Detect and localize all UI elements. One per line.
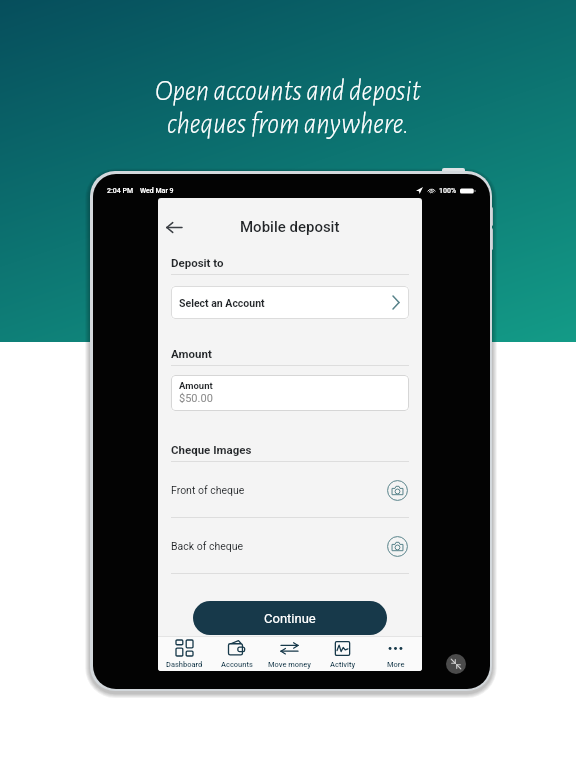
staticText: Open accounts and deposit cheques from a… (0, 77, 576, 139)
staticText: 2:04 PM (107, 187, 134, 195)
button[interactable]: Activity (316, 637, 369, 671)
staticText: More (387, 660, 405, 669)
button[interactable]: Continue (193, 601, 387, 635)
staticText: Continue (264, 611, 316, 626)
button[interactable]: Accounts (210, 637, 263, 671)
button[interactable]: Take photo (385, 534, 409, 558)
button[interactable]: Back (160, 213, 188, 241)
staticText: Front of cheque (171, 484, 245, 496)
staticText: Activity (330, 660, 356, 669)
button[interactable]: Move money (263, 637, 316, 671)
button[interactable]: Collapse (446, 654, 466, 674)
button[interactable]: Take photo (385, 478, 409, 502)
staticText: Deposit to (171, 256, 224, 269)
staticText: Amount (171, 347, 212, 360)
staticText: 100% (439, 187, 457, 195)
staticText: Accounts (221, 660, 253, 669)
button[interactable]: Dashboard (158, 637, 210, 671)
staticText: Move money (268, 660, 311, 669)
button[interactable]: Front of cheque (171, 462, 409, 518)
staticText: Back of cheque (171, 540, 244, 552)
staticText: Mobile deposit (240, 218, 340, 236)
button[interactable]: Amount (171, 375, 409, 411)
staticText: Select an Account (179, 297, 265, 309)
staticText: Cheque Images (171, 443, 252, 456)
staticText: $50.00 (179, 392, 213, 405)
button[interactable]: More (369, 637, 422, 671)
button[interactable]: Select an Account (171, 286, 409, 319)
staticText: Dashboard (166, 660, 203, 669)
button[interactable]: Back of cheque (171, 518, 409, 574)
staticText: Wed Mar 9 (140, 187, 174, 195)
staticText: Amount (179, 380, 213, 391)
